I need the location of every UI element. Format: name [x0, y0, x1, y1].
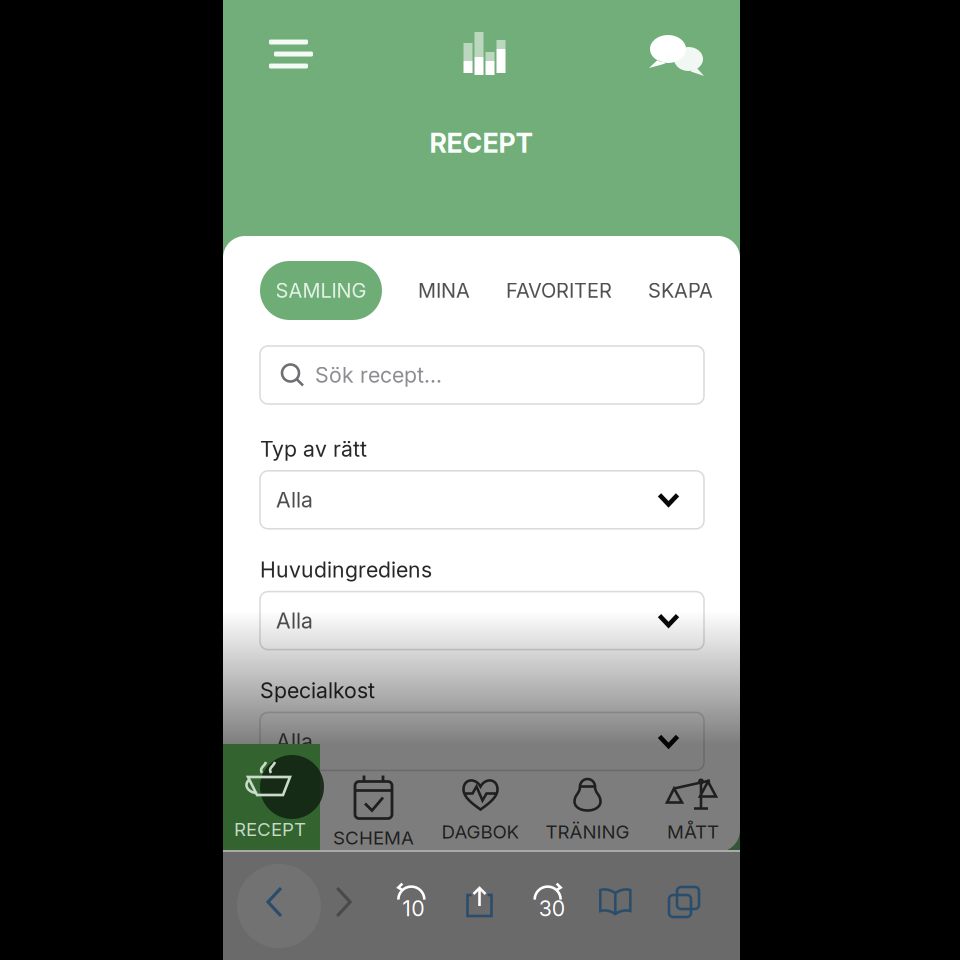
button[interactable]: Bookmarks [594, 880, 638, 924]
staticText: 30 [539, 896, 565, 921]
staticText: Huvudingrediens [260, 557, 432, 583]
staticText: DAGBOK [441, 820, 519, 843]
button[interactable]: Tabs [662, 880, 706, 924]
staticText: MÅTT [667, 820, 719, 843]
staticText: RECEPT [429, 127, 533, 159]
button[interactable]: Alla [260, 592, 704, 650]
button[interactable]: Alla [260, 712, 704, 770]
button[interactable]: Home [458, 31, 510, 77]
staticText: Specialkost [260, 678, 375, 703]
button[interactable]: DAGBOK [427, 756, 534, 863]
staticText: SAMLING [275, 278, 366, 303]
button[interactable]: SCHEMA [320, 756, 427, 863]
button[interactable]: Skip back 10 seconds [389, 880, 433, 924]
button[interactable]: MINA [418, 261, 470, 320]
button[interactable]: TRÄNING [534, 756, 641, 863]
staticText: Typ av rätt [260, 436, 367, 462]
button[interactable]: Sök recept… [260, 346, 704, 404]
button[interactable]: Alla [260, 471, 704, 529]
button[interactable]: RECEPT [223, 744, 320, 876]
button[interactable]: MÅTT [641, 756, 745, 863]
staticText: Alla [276, 728, 313, 754]
staticText: SKAPA [648, 278, 713, 303]
button[interactable]: Menu [265, 31, 317, 77]
button[interactable]: SKAPA [648, 261, 713, 320]
button[interactable]: FAVORITER [506, 261, 612, 320]
staticText: SCHEMA [333, 826, 414, 849]
button[interactable]: Skip forward 30 seconds [526, 880, 570, 924]
button[interactable]: Back [253, 880, 297, 924]
staticText: Sök recept… [315, 362, 442, 388]
staticText: MINA [418, 278, 470, 303]
staticText: TRÄNING [545, 820, 629, 843]
staticText: RECEPT [234, 818, 306, 841]
button[interactable]: Forward [321, 880, 365, 924]
staticText: Alla [276, 608, 313, 633]
button[interactable]: SAMLING [260, 261, 382, 320]
staticText: 10 [402, 896, 424, 921]
staticText: Alla [276, 487, 313, 513]
staticText: FAVORITER [506, 278, 612, 303]
button[interactable]: Share [457, 880, 501, 924]
button[interactable]: Messages [652, 31, 704, 77]
